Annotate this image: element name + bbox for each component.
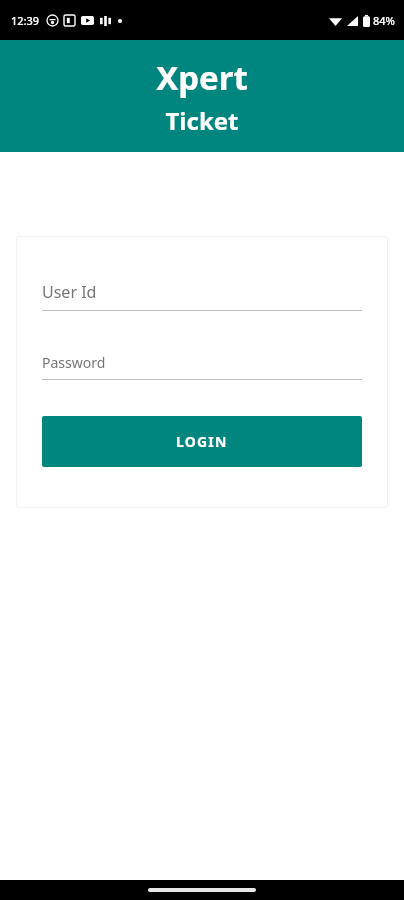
button[interactable]: User Id: [42, 281, 362, 311]
staticText: 84%: [373, 13, 395, 28]
staticText: User Id: [42, 281, 97, 303]
staticText: Ticket: [165, 104, 239, 137]
button[interactable]: Password: [42, 353, 362, 380]
staticText: Password: [42, 353, 106, 372]
button[interactable]: LOGIN: [42, 416, 362, 467]
staticText: 12:39: [11, 13, 40, 28]
staticText: LOGIN: [176, 432, 228, 451]
staticText: Xpert: [156, 55, 248, 100]
